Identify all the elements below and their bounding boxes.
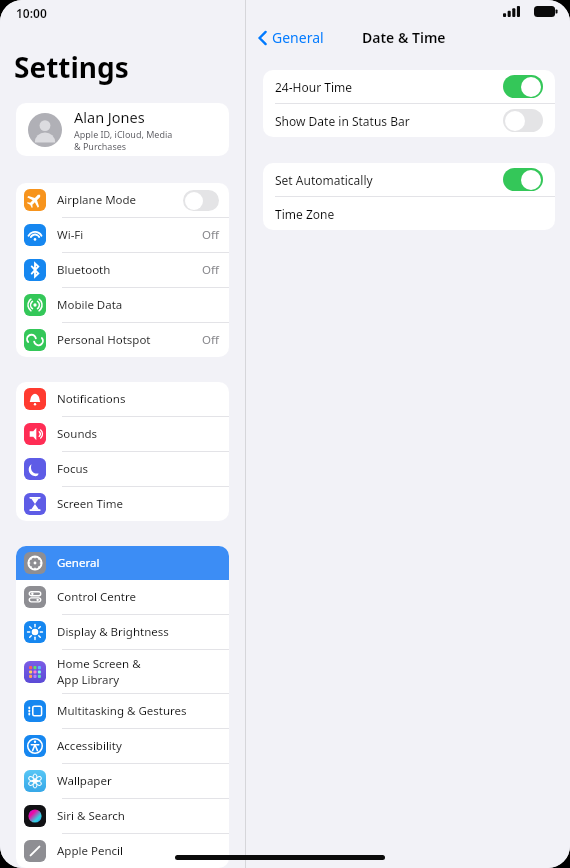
staticText: Off: [202, 262, 219, 278]
button[interactable]: Bluetooth: [16, 253, 229, 287]
button[interactable]: Set Automatically: [263, 163, 555, 196]
staticText: Screen Time: [57, 496, 124, 512]
staticText: Focus: [57, 461, 89, 477]
button[interactable]: Focus: [16, 452, 229, 486]
button[interactable]: Siri & Search: [16, 799, 229, 833]
staticText: 24-Hour Time: [275, 79, 503, 95]
button[interactable]: Airplane Mode: [16, 183, 229, 217]
staticText: & Purchases: [74, 140, 127, 152]
button[interactable]: Toggle off: [503, 109, 543, 132]
button[interactable]: Home Screen &: [16, 650, 229, 693]
staticText: Personal Hotspot: [57, 332, 151, 348]
staticText: Bluetooth: [57, 262, 111, 278]
button[interactable]: Control Centre: [16, 580, 229, 614]
staticText: Sounds: [57, 426, 98, 442]
staticText: Wallpaper: [57, 773, 112, 789]
button[interactable]: Mobile Data: [16, 288, 229, 322]
button[interactable]: Apple Pencil: [16, 834, 229, 868]
button[interactable]: Display & Brightness: [16, 615, 229, 649]
staticText: Accessibility: [57, 738, 122, 754]
staticText: Settings: [14, 48, 129, 86]
button[interactable]: Toggle on: [503, 75, 543, 98]
staticText: App Library: [57, 672, 120, 688]
button[interactable]: Wi-Fi: [16, 218, 229, 252]
button[interactable]: 24-Hour Time: [263, 70, 555, 103]
staticText: Mobile Data: [57, 297, 123, 313]
button[interactable]: Wallpaper: [16, 764, 229, 798]
staticText: Home Screen &: [57, 656, 141, 672]
staticText: Off: [202, 227, 219, 243]
button[interactable]: Screen Time: [16, 487, 229, 521]
staticText: Display & Brightness: [57, 624, 169, 640]
button[interactable]: Time Zone: [263, 197, 555, 230]
staticText: Set Automatically: [275, 172, 503, 188]
button[interactable]: Accessibility: [16, 729, 229, 763]
staticText: Multitasking & Gestures: [57, 703, 187, 719]
button[interactable]: Multitasking & Gestures: [16, 694, 229, 728]
staticText: Siri & Search: [57, 808, 125, 824]
button[interactable]: General: [16, 546, 229, 580]
staticText: Alan Jones: [74, 107, 145, 127]
button[interactable]: Toggle off: [183, 190, 219, 211]
button[interactable]: Personal Hotspot: [16, 323, 229, 357]
staticText: Time Zone: [275, 206, 543, 222]
staticText: 10:00: [16, 5, 47, 21]
staticText: Apple ID, iCloud, Media: [74, 128, 173, 140]
staticText: Apple Pencil: [57, 843, 123, 859]
button[interactable]: Notifications: [16, 382, 229, 416]
staticText: General: [272, 28, 324, 47]
button[interactable]: General: [258, 28, 324, 47]
button[interactable]: Sounds: [16, 417, 229, 451]
staticText: Off: [202, 332, 219, 348]
button[interactable]: Alan Jones: [16, 103, 229, 156]
staticText: Show Date in Status Bar: [275, 113, 503, 129]
staticText: Wi-Fi: [57, 227, 84, 243]
staticText: Notifications: [57, 391, 126, 407]
staticText: General: [57, 555, 100, 571]
staticText: Airplane Mode: [57, 192, 137, 208]
staticText: Control Centre: [57, 589, 136, 605]
button[interactable]: Toggle on: [503, 168, 543, 191]
staticText: Date & Time: [362, 28, 446, 47]
button[interactable]: Show Date in Status Bar: [263, 104, 555, 137]
